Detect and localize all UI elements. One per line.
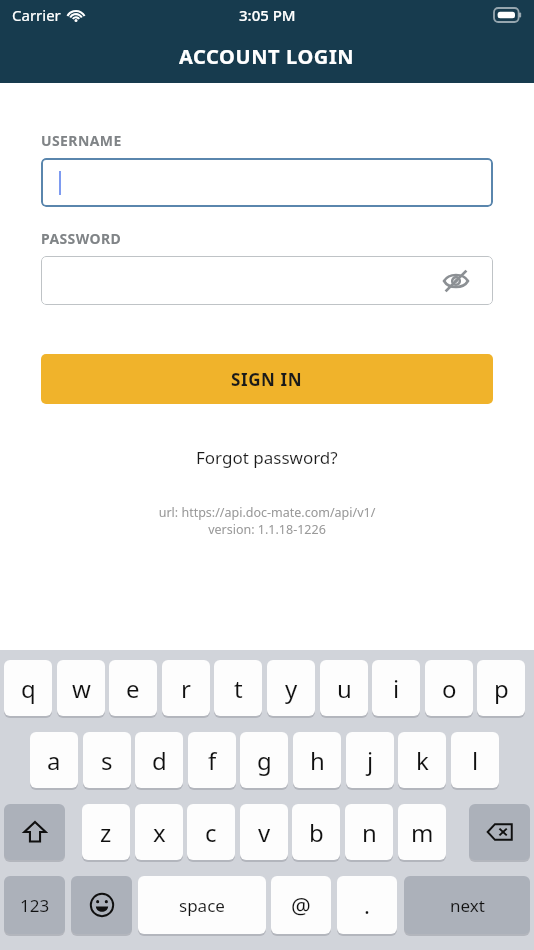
staticText: a bbox=[47, 744, 61, 777]
button[interactable]: w bbox=[57, 660, 105, 716]
staticText: x bbox=[153, 816, 166, 849]
staticText: e bbox=[126, 672, 140, 705]
button[interactable]: space bbox=[138, 876, 266, 934]
button[interactable] bbox=[41, 158, 493, 207]
button[interactable]: Forgot password? bbox=[188, 442, 346, 473]
staticText: q bbox=[21, 672, 36, 705]
staticText: j bbox=[367, 744, 374, 777]
button[interactable]: 123 bbox=[4, 876, 65, 934]
staticText: m bbox=[411, 816, 434, 849]
staticText: w bbox=[72, 672, 91, 705]
staticText: space bbox=[179, 894, 225, 917]
button[interactable]: next bbox=[404, 876, 530, 934]
button[interactable]: r bbox=[162, 660, 210, 716]
button[interactable]: i bbox=[372, 660, 420, 716]
staticText: g bbox=[257, 744, 272, 777]
staticText: url: https://api.doc-mate.com/api/v1/ ve… bbox=[41, 504, 493, 537]
button[interactable]: s bbox=[83, 732, 131, 788]
staticText: i bbox=[393, 672, 400, 705]
button[interactable]: g bbox=[240, 732, 288, 788]
staticText: n bbox=[362, 816, 377, 849]
staticText: u bbox=[337, 672, 352, 705]
button[interactable]: z bbox=[82, 804, 130, 860]
staticText: o bbox=[442, 672, 457, 705]
staticText: k bbox=[416, 744, 429, 777]
staticText: d bbox=[152, 744, 167, 777]
button[interactable]: v bbox=[240, 804, 288, 860]
button[interactable]: SIGN IN bbox=[41, 354, 493, 404]
button[interactable]: d bbox=[135, 732, 183, 788]
staticText: Forgot password? bbox=[196, 446, 338, 469]
staticText: USERNAME bbox=[41, 131, 122, 150]
staticText: l bbox=[472, 744, 479, 777]
staticText: y bbox=[285, 672, 298, 705]
button[interactable]: a bbox=[30, 732, 78, 788]
button[interactable]: n bbox=[345, 804, 393, 860]
button[interactable]: Shift bbox=[4, 804, 65, 860]
staticText: b bbox=[309, 816, 324, 849]
button[interactable]: x bbox=[135, 804, 183, 860]
staticText: c bbox=[205, 816, 217, 849]
staticText: r bbox=[181, 672, 191, 705]
staticText: z bbox=[100, 816, 112, 849]
button[interactable]: c bbox=[187, 804, 235, 860]
button[interactable]: p bbox=[477, 660, 525, 716]
staticText: . bbox=[364, 890, 370, 920]
button[interactable]: e bbox=[109, 660, 157, 716]
staticText: f bbox=[208, 744, 217, 777]
button[interactable]: h bbox=[293, 732, 341, 788]
button[interactable]: o bbox=[425, 660, 473, 716]
button[interactable]: Delete bbox=[469, 804, 530, 860]
staticText: PASSWORD bbox=[41, 229, 122, 248]
staticText: t bbox=[234, 672, 243, 705]
button[interactable]: t bbox=[214, 660, 262, 716]
staticText: v bbox=[258, 816, 271, 849]
button[interactable]: f bbox=[188, 732, 236, 788]
staticText: p bbox=[494, 672, 509, 705]
staticText: ACCOUNT LOGIN bbox=[179, 43, 355, 70]
staticText: h bbox=[310, 744, 325, 777]
staticText: @ bbox=[291, 890, 311, 920]
staticText: next bbox=[450, 894, 485, 917]
button[interactable]: m bbox=[398, 804, 446, 860]
staticText: 3:05 PM bbox=[239, 5, 296, 25]
button[interactable]: @ bbox=[271, 876, 331, 934]
button[interactable]: Emoji bbox=[71, 876, 132, 934]
staticText: Carrier bbox=[12, 5, 61, 25]
button[interactable]: l bbox=[451, 732, 499, 788]
button[interactable]: Show password bbox=[41, 256, 493, 305]
button[interactable]: . bbox=[337, 876, 397, 934]
button[interactable]: q bbox=[4, 660, 52, 716]
button[interactable]: Show password bbox=[443, 268, 469, 294]
staticText: 123 bbox=[20, 894, 50, 917]
button[interactable]: b bbox=[292, 804, 340, 860]
button[interactable]: j bbox=[346, 732, 394, 788]
button[interactable]: u bbox=[320, 660, 368, 716]
button[interactable]: y bbox=[267, 660, 315, 716]
button[interactable]: k bbox=[398, 732, 446, 788]
staticText: SIGN IN bbox=[231, 368, 303, 391]
staticText: s bbox=[101, 744, 113, 777]
